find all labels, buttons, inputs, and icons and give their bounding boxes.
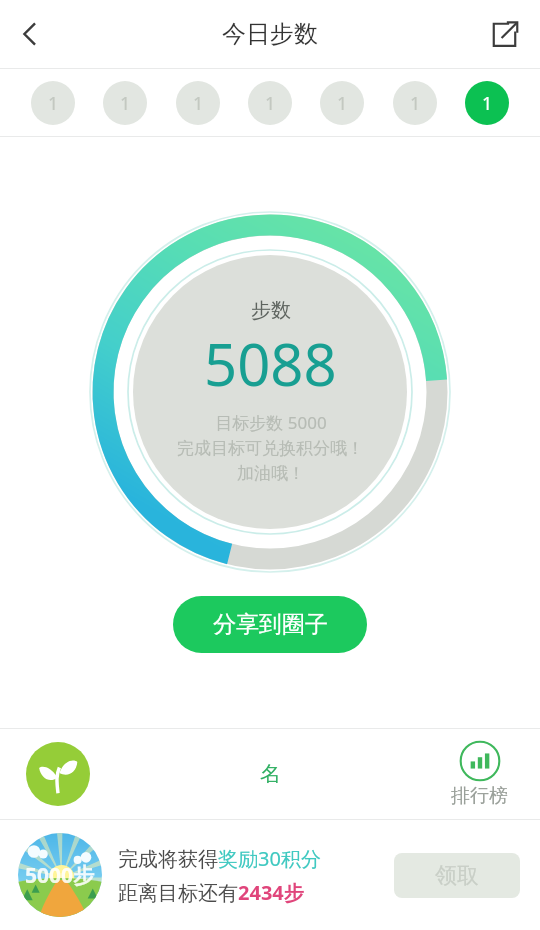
staticText: 1 bbox=[337, 91, 348, 116]
button[interactable]: 名 bbox=[260, 761, 281, 787]
staticText: 排行榜 bbox=[451, 784, 508, 808]
staticText: 1 bbox=[193, 91, 204, 116]
staticText: 完成将获得奖励30积分 bbox=[118, 845, 321, 872]
staticText: 加油哦！ bbox=[237, 463, 305, 484]
staticText: 5000步 bbox=[25, 861, 95, 890]
staticText: 1 bbox=[120, 91, 131, 116]
staticText: 分享到圈子 bbox=[213, 610, 328, 639]
staticText: 距离目标还有2434步 bbox=[118, 879, 304, 906]
staticText: 目标步数 5000 bbox=[215, 411, 327, 434]
button[interactable]: 领取 bbox=[394, 853, 520, 898]
staticText: 今日步数 bbox=[222, 19, 318, 49]
button[interactable]: 分享到圈子 bbox=[173, 596, 367, 653]
staticText: 1 bbox=[265, 91, 276, 116]
button[interactable]: 1 bbox=[320, 81, 364, 125]
button[interactable]: 5000 steps badge bbox=[18, 833, 102, 917]
staticText: 名 bbox=[260, 761, 281, 787]
button[interactable]: 1 bbox=[465, 81, 509, 125]
button[interactable]: 1 bbox=[248, 81, 292, 125]
staticText: 5088 bbox=[204, 324, 337, 403]
button[interactable]: 1 bbox=[31, 81, 75, 125]
button[interactable]: 1 bbox=[176, 81, 220, 125]
staticText: 1 bbox=[410, 91, 421, 116]
staticText: 1 bbox=[482, 91, 493, 116]
staticText: 完成目标可兑换积分哦！ bbox=[177, 438, 364, 459]
button[interactable]: Share bbox=[476, 6, 532, 62]
button[interactable]: Sprout bbox=[26, 742, 90, 806]
button[interactable]: 排行榜 bbox=[451, 740, 508, 808]
button[interactable]: 1 bbox=[103, 81, 147, 125]
staticText: 1 bbox=[48, 91, 59, 116]
button[interactable]: 1 bbox=[393, 81, 437, 125]
button[interactable]: Back bbox=[2, 6, 58, 62]
staticText: 领取 bbox=[435, 862, 479, 890]
staticText: 步数 bbox=[251, 298, 291, 323]
